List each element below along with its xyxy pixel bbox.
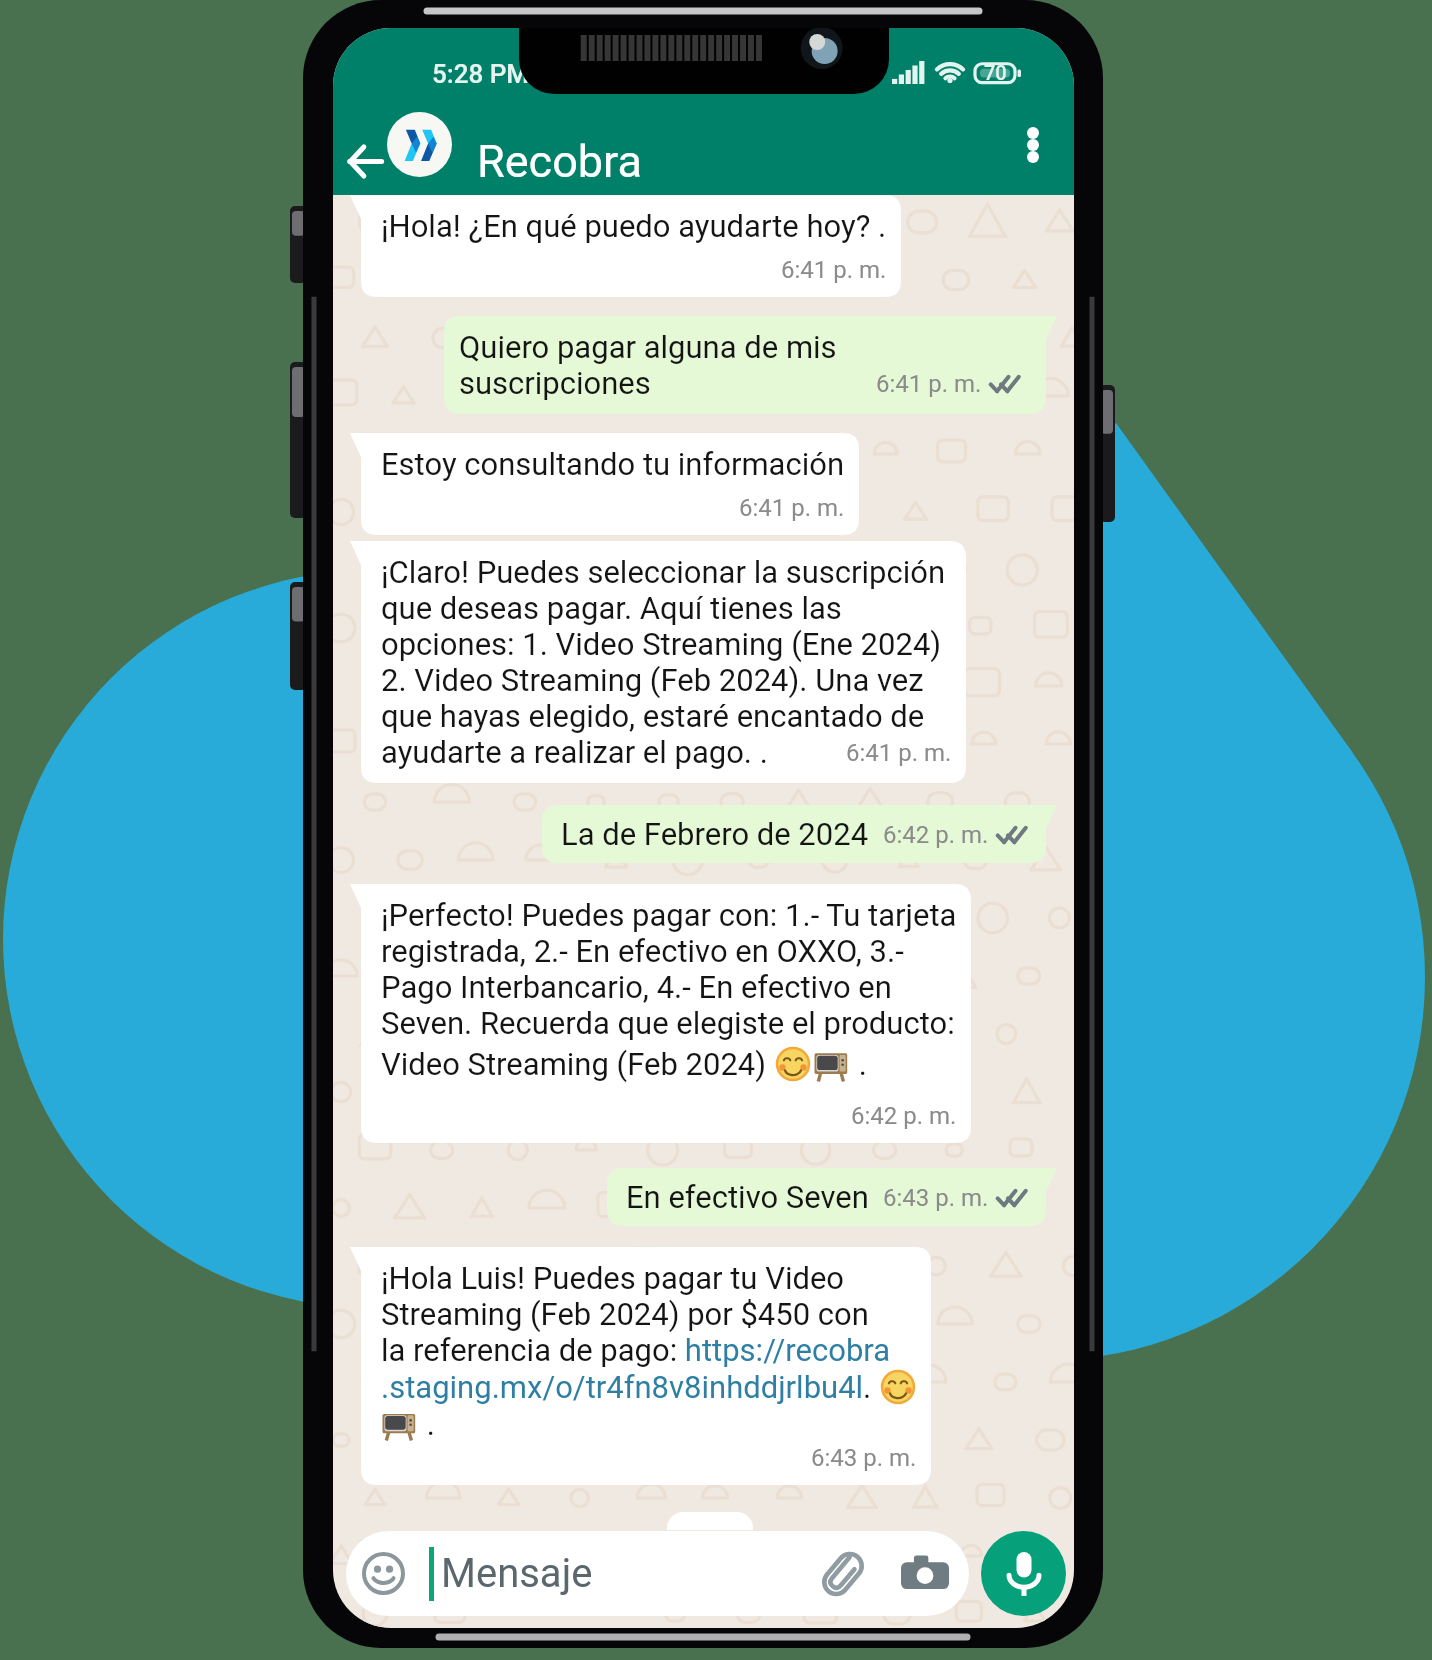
staticText: 6:42 p. m. — [883, 821, 989, 849]
staticText: ¡Perfecto! Puedes pagar con: 1.- Tu tarj… — [381, 897, 957, 1041]
staticText: 70 — [984, 61, 1007, 84]
button[interactable]: Emoji — [362, 1552, 405, 1595]
staticText: La de Febrero de 2024 — [561, 816, 869, 852]
staticText: Recobra — [477, 135, 642, 188]
staticText: Mensaje — [441, 1550, 593, 1597]
staticText: 5:28 PM — [432, 59, 530, 89]
staticText: En efectivo Seven — [626, 1179, 869, 1215]
button[interactable]: Back — [337, 133, 393, 189]
button[interactable]: Record voice message — [981, 1531, 1066, 1616]
staticText: ¡Hola Luis! Puedes pagar tu Video Stream… — [381, 1260, 891, 1368]
staticText: ¡Hola! ¿En qué puedo ayudarte hoy? . — [381, 208, 887, 244]
staticText: Estoy consultando tu información — [381, 446, 845, 482]
staticText: . — [851, 1046, 867, 1082]
staticText: 6:43 p. m. — [811, 1444, 917, 1472]
button[interactable]: Emoji — [346, 1531, 969, 1616]
staticText: 6:42 p. m. — [851, 1102, 957, 1130]
button[interactable]: Quiero pagar alguna de mis — [444, 316, 1057, 414]
button[interactable]: La de Febrero de 2024 — [542, 805, 1057, 863]
staticText: suscripciones — [459, 365, 651, 401]
button[interactable]: ¡Hola Luis! Puedes pagar tu Video Stream… — [350, 1247, 931, 1485]
button[interactable]: ¡Perfecto! Puedes pagar con: 1.- Tu tarj… — [350, 884, 971, 1143]
button[interactable]: Attach file — [821, 1549, 865, 1599]
staticText: 6:41 p. m. — [846, 739, 952, 767]
button[interactable]: ¡Hola! ¿En qué puedo ayudarte hoy? . — [350, 195, 901, 297]
staticText: . — [419, 1406, 435, 1442]
staticText: 6:41 p. m. — [781, 256, 887, 284]
staticText: .staging.mx/o/tr4fn8v8inhddjrlbu4l. — [381, 1369, 879, 1405]
staticText: 6:43 p. m. — [883, 1184, 989, 1212]
button[interactable]: Estoy consultando tu información — [350, 433, 859, 535]
staticText: ¡Claro! Puedes seleccionar la suscripció… — [381, 554, 946, 734]
staticText: ayudarte a realizar el pago. . — [381, 734, 768, 770]
staticText: 6:41 p. m. — [739, 494, 845, 522]
button[interactable]: En efectivo Seven — [607, 1168, 1057, 1226]
staticText: 6:41 p. m. — [876, 370, 982, 398]
staticText: Video Streaming (Feb 2024) — [381, 1046, 774, 1082]
button[interactable]: Camera — [901, 1553, 949, 1595]
button[interactable]: More options — [1007, 119, 1059, 171]
staticText: Quiero pagar alguna de mis — [459, 329, 837, 365]
button[interactable]: ¡Claro! Puedes seleccionar la suscripció… — [350, 541, 966, 783]
